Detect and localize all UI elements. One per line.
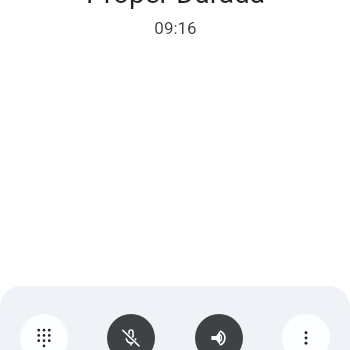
button[interactable]: Speaker	[195, 314, 243, 350]
button[interactable]: Dialpad	[20, 314, 68, 350]
staticText: Proper Durada	[86, 0, 265, 10]
button[interactable]: Mute	[107, 314, 155, 350]
staticText: 09:16	[154, 18, 197, 38]
button[interactable]: More options	[282, 314, 330, 350]
